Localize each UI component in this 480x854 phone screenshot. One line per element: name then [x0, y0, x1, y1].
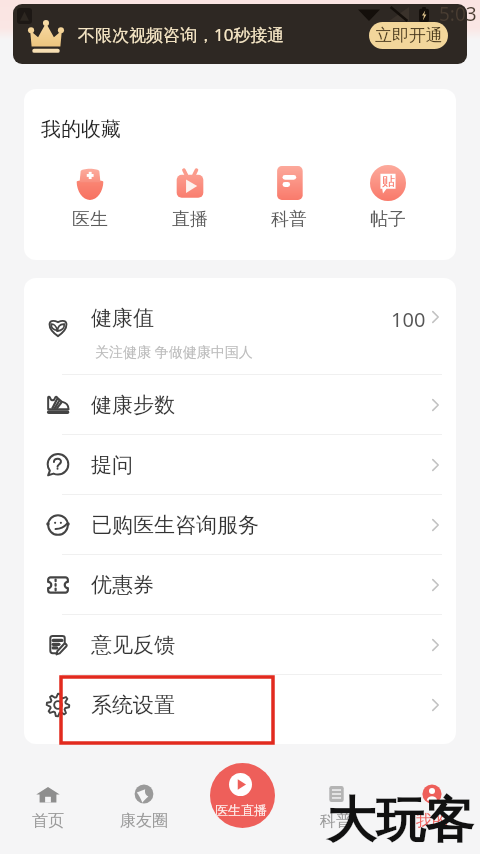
button[interactable]: 健康步数 — [24, 375, 456, 434]
staticText: 100 — [391, 306, 426, 333]
button[interactable]: 意见反馈 — [24, 615, 456, 674]
button[interactable]: 健康值 — [24, 278, 456, 374]
staticText: 康友圈 — [120, 811, 168, 831]
button[interactable]: 不限次视频咨询，10秒接通 — [13, 4, 467, 64]
button[interactable]: 提问 — [24, 435, 456, 494]
staticText: 我的 — [416, 811, 448, 831]
button[interactable]: 已购医生咨询服务 — [24, 495, 456, 554]
staticText: 已购医生咨询服务 — [91, 512, 259, 538]
staticText: 立即开通 — [375, 25, 443, 46]
button[interactable]: 贴 — [338, 165, 437, 231]
staticText: 直播 — [172, 208, 208, 231]
button[interactable]: 康友圈 — [96, 762, 192, 831]
staticText: 意见反馈 — [91, 632, 175, 658]
button[interactable]: 科普 — [288, 762, 384, 831]
button[interactable]: 医生 — [40, 165, 140, 231]
staticText: 健康值 — [91, 305, 154, 331]
staticText: 医生直播 — [215, 802, 267, 818]
button[interactable]: 科普 — [239, 165, 338, 231]
button[interactable]: 优惠券 — [24, 555, 456, 614]
button[interactable]: 立即开通 — [369, 22, 448, 49]
staticText: 医生 — [72, 208, 108, 231]
staticText: 不限次视频咨询，10秒接通 — [78, 23, 285, 46]
button[interactable]: 首页 — [0, 762, 96, 831]
staticText: 大玩客 — [327, 790, 474, 852]
staticText: 我的收藏 — [41, 117, 121, 142]
staticText: 提问 — [91, 452, 133, 478]
staticText: 系统设置 — [91, 692, 175, 718]
staticText: 5:03 — [439, 1, 477, 27]
staticText: 科普 — [271, 208, 307, 231]
staticText: 首页 — [32, 811, 64, 831]
button[interactable]: 我的 — [384, 762, 480, 831]
button[interactable]: 医生直播 — [210, 763, 275, 828]
staticText: 帖子 — [370, 208, 406, 231]
staticText: 关注健康 争做健康中国人 — [95, 342, 253, 361]
staticText: 健康步数 — [91, 392, 175, 418]
button[interactable]: 直播 — [140, 165, 239, 231]
staticText: 优惠券 — [91, 572, 154, 598]
staticText: 科普 — [320, 811, 352, 831]
button[interactable]: 系统设置 — [24, 675, 456, 734]
staticText: 贴 — [382, 173, 395, 189]
